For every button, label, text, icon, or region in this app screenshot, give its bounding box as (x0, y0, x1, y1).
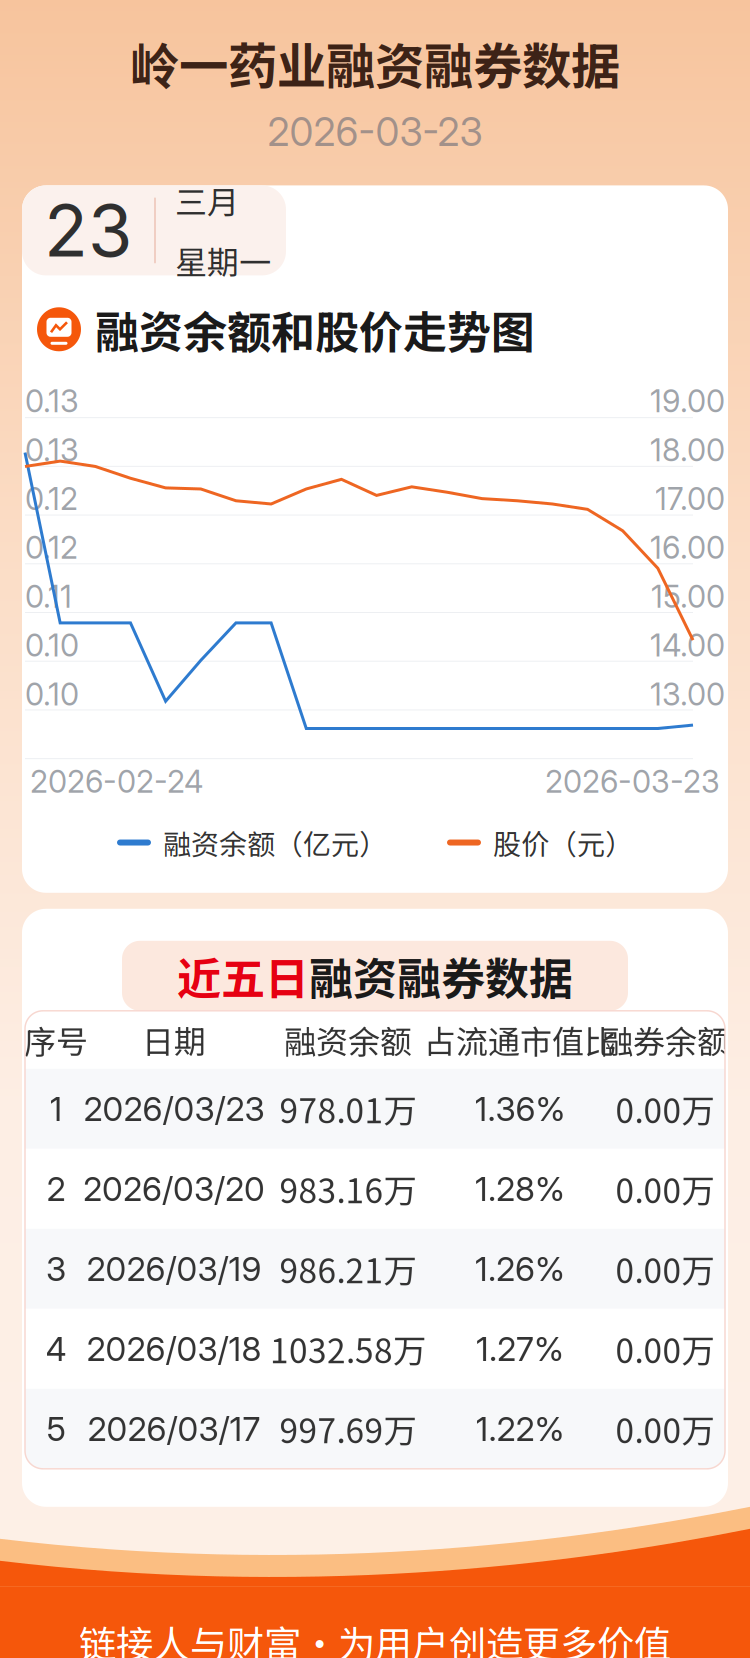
staticText: 日期 (142, 1017, 206, 1063)
staticText: 983.16万 (279, 1165, 416, 1213)
staticText: 融资融券数据 (309, 944, 573, 1008)
staticText: 融券余额 (601, 1017, 729, 1063)
staticText: 0.10 (25, 676, 79, 713)
staticText: 2 (46, 1169, 65, 1209)
staticText: 0.12 (25, 480, 78, 517)
staticText: 986.21万 (279, 1245, 416, 1293)
staticText: 0.00万 (615, 1085, 714, 1133)
staticText: 15.00 (651, 578, 725, 615)
staticText: 0.00万 (615, 1405, 714, 1453)
staticText: 1 (49, 1089, 62, 1129)
staticText: 0.11 (25, 578, 72, 615)
staticText: 997.69万 (279, 1405, 416, 1453)
staticText: 序号 (24, 1017, 88, 1063)
staticText: 1.28% (475, 1169, 565, 1209)
staticText: 0.00万 (615, 1245, 714, 1293)
staticText: 星期一 (175, 237, 271, 284)
staticText: 4 (45, 1329, 66, 1369)
staticText: 0.13 (25, 431, 79, 468)
staticText: 2026/03/23 (83, 1089, 264, 1129)
staticText: 0.00万 (615, 1325, 714, 1373)
staticText: 2026-03-23 (267, 109, 482, 155)
staticText: 链接人与财富·为用户创造更多价值 (79, 1615, 671, 1658)
staticText: 23 (44, 187, 132, 274)
staticText: 1.22% (475, 1409, 564, 1449)
staticText: 1.36% (474, 1089, 565, 1129)
staticText: 0.13 (25, 383, 79, 420)
staticText: 5 (46, 1409, 65, 1449)
staticText: 融资余额 (284, 1017, 412, 1063)
staticText: 2026/03/17 (87, 1409, 260, 1449)
staticText: 2026/03/19 (86, 1249, 261, 1289)
staticText: 14.00 (650, 627, 725, 664)
staticText: 1032.58万 (270, 1325, 426, 1373)
staticText: 18.00 (650, 431, 725, 468)
staticText: 0.00万 (615, 1165, 714, 1213)
staticText: 13.00 (650, 676, 725, 713)
staticText: 0.12 (25, 529, 78, 566)
staticText: 978.01万 (279, 1085, 416, 1133)
staticText: 占流通市值比 (424, 1017, 616, 1063)
staticText: 融资余额和股价走势图 (95, 297, 535, 361)
staticText: 19.00 (650, 383, 725, 420)
staticText: 2026/03/20 (83, 1169, 265, 1209)
staticText: 股价（元） (493, 822, 633, 863)
staticText: 三月 (175, 177, 239, 223)
staticText: 2026-02-24 (30, 763, 203, 800)
staticText: 1.26% (475, 1249, 565, 1289)
staticText: 2026/03/18 (86, 1329, 261, 1369)
staticText: 融资余额（亿元） (163, 822, 387, 863)
staticText: 近五日 (177, 944, 309, 1008)
staticText: 2026-03-23 (545, 763, 720, 800)
staticText: 岭一药业融资融券数据 (130, 27, 620, 99)
staticText: 16.00 (650, 529, 725, 566)
staticText: 0.10 (25, 627, 79, 664)
staticText: 1.27% (476, 1329, 564, 1369)
staticText: 3 (46, 1249, 66, 1289)
staticText: 17.00 (655, 480, 725, 517)
